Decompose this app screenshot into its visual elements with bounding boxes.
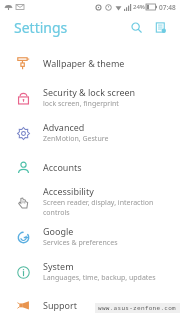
button[interactable]: Accounts [0,150,180,184]
staticText: Wallpaper & theme [43,57,125,69]
staticText: 07:48 [159,3,176,12]
staticText: Settings [14,18,68,37]
staticText: 24% [133,3,145,11]
button[interactable]: Google [0,219,180,254]
staticText: Google [43,225,74,237]
button[interactable]: Security & lock screen [0,80,180,115]
staticText: ZenMotion, Gesture [43,134,109,144]
button[interactable]: Wallpaper & theme [0,46,180,80]
button[interactable]: Search [126,17,146,37]
button[interactable]: Advanced [0,115,180,150]
staticText: lock screen, fingerprint [43,99,119,109]
staticText: Accessibility [43,185,94,197]
staticText: www.asus-zenfone.com [98,304,177,312]
staticText: Screen reader, display, interaction cont… [43,198,170,218]
staticText: Security & lock screen [43,86,136,98]
button[interactable]: Accessibility [0,184,180,219]
button[interactable]: System [0,254,180,289]
staticText: Support [43,299,77,311]
button[interactable]: Support [0,289,180,320]
button[interactable]: Help and feedback [150,17,170,37]
staticText: Advanced [43,121,85,133]
staticText: Accounts [43,161,82,173]
staticText: System [43,260,74,272]
staticText: Services & preferences [43,238,118,248]
staticText: Languages, time, backup, updates [43,273,156,283]
